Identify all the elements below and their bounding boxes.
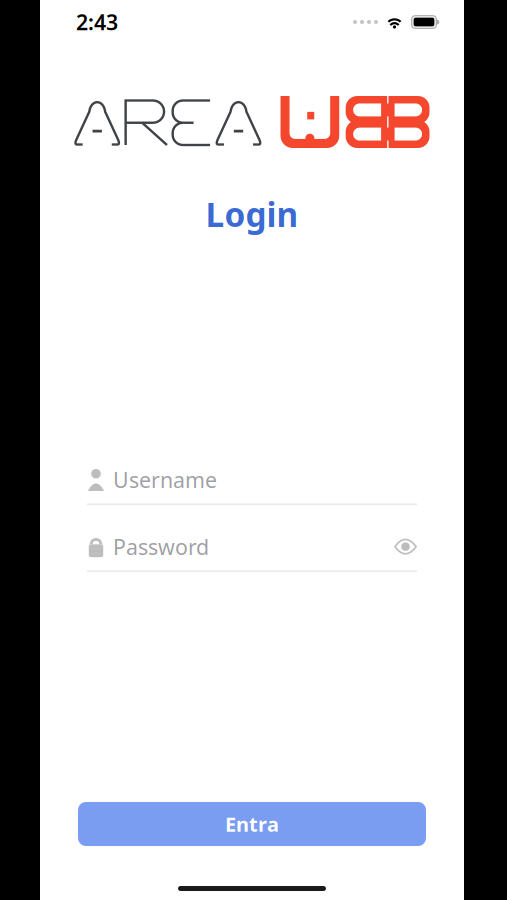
staticText: Entra [225,811,279,837]
button[interactable]: Password [87,534,417,572]
button[interactable]: Entra [78,802,426,846]
staticText: Password [113,532,209,561]
staticText: Username [113,465,217,494]
button[interactable]: Username [87,467,417,505]
staticText: Login [205,192,298,236]
staticText: 2:43 [76,8,118,36]
